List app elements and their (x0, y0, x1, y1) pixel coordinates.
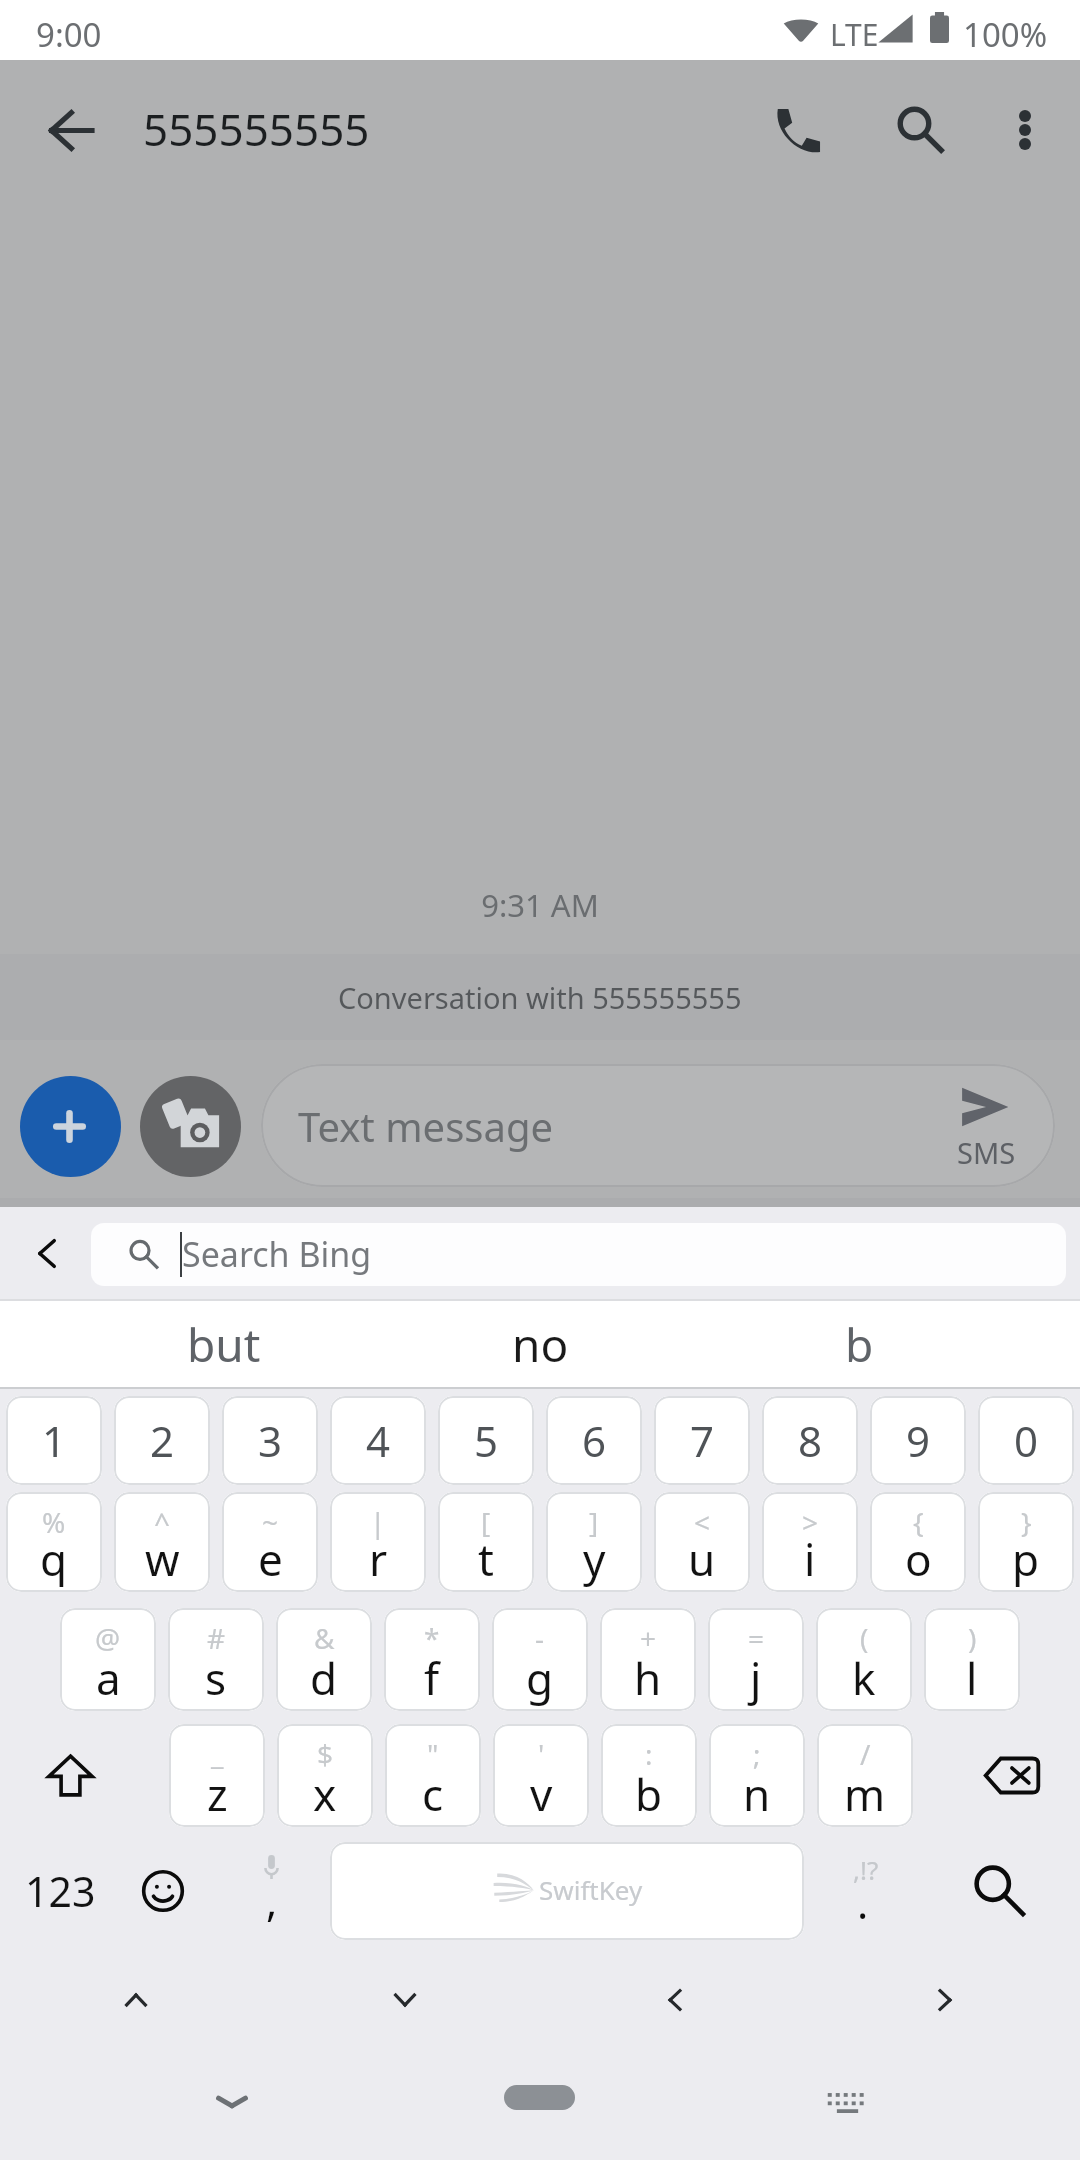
button[interactable]: Down (365, 1960, 445, 2040)
staticText: 555555555 (143, 99, 370, 159)
staticText: 7 (690, 1412, 715, 1469)
button[interactable]: ; (709, 1724, 805, 1827)
button[interactable]: _ (169, 1724, 265, 1827)
button[interactable]: Backspace (925, 1724, 1080, 1827)
staticText: d (310, 1648, 338, 1708)
staticText: { (913, 1503, 924, 1541)
button[interactable]: & (276, 1608, 372, 1711)
button[interactable]: ) (924, 1608, 1020, 1711)
button[interactable]: Add attachment (20, 1076, 121, 1177)
button[interactable]: > (762, 1492, 858, 1592)
button[interactable]: Back (28, 88, 112, 172)
staticText: ~ (262, 1503, 279, 1541)
staticText: f (424, 1648, 440, 1708)
button[interactable]: | (330, 1492, 426, 1592)
staticText: @ (95, 1619, 121, 1657)
button[interactable]: Right (905, 1960, 985, 2040)
button[interactable]: Period (810, 1842, 918, 1940)
button[interactable]: Back (16, 1224, 74, 1282)
staticText: - (535, 1619, 545, 1657)
button[interactable]: { (870, 1492, 966, 1592)
button[interactable]: Switch keyboard (806, 2062, 886, 2142)
button[interactable]: Search Bing (91, 1223, 1066, 1286)
button[interactable]: 8 (762, 1396, 858, 1485)
button[interactable]: 5 (438, 1396, 534, 1485)
button[interactable]: 1 (6, 1396, 102, 1485)
button[interactable]: < (654, 1492, 750, 1592)
button[interactable]: Call (750, 80, 850, 180)
button[interactable]: More options (975, 80, 1075, 180)
button[interactable]: } (978, 1492, 1074, 1592)
staticText: & (314, 1619, 335, 1657)
staticText: e (258, 1529, 283, 1589)
button[interactable]: 0 (978, 1396, 1074, 1485)
staticText: ,!? (853, 1852, 879, 1887)
staticText: % (42, 1503, 66, 1541)
button[interactable]: ~ (222, 1492, 318, 1592)
button[interactable]: ] (546, 1492, 642, 1592)
staticText: < (694, 1503, 711, 1541)
button[interactable]: ' (493, 1724, 589, 1827)
button[interactable]: Search (870, 80, 970, 180)
button[interactable]: / (817, 1724, 913, 1827)
staticText: | (370, 1503, 386, 1541)
button[interactable]: ( (816, 1608, 912, 1711)
staticText: b (635, 1764, 663, 1824)
staticText: u (688, 1529, 716, 1589)
button[interactable]: no (380, 1301, 700, 1387)
button[interactable]: Left (635, 1960, 715, 2040)
button[interactable]: + (600, 1608, 696, 1711)
button[interactable]: @ (60, 1608, 156, 1711)
button[interactable]: Hide keyboard (192, 2062, 272, 2142)
staticText: q (40, 1529, 68, 1589)
button[interactable]: b (699, 1301, 1019, 1387)
button[interactable]: 6 (546, 1396, 642, 1485)
button[interactable]: - (492, 1608, 588, 1711)
staticText: } (1021, 1503, 1032, 1541)
button[interactable]: Comma and voice input (214, 1842, 326, 1940)
button[interactable]: Search (946, 1842, 1052, 1940)
button[interactable]: Home (504, 2085, 575, 2110)
staticText: 8 (798, 1412, 823, 1469)
staticText: 4 (366, 1412, 391, 1469)
button[interactable]: 4 (330, 1396, 426, 1485)
button[interactable]: Shift (0, 1724, 169, 1827)
staticText: LTE (830, 14, 879, 55)
staticText: 6 (582, 1412, 607, 1469)
button[interactable]: ^ (114, 1492, 210, 1592)
button[interactable]: 3 (222, 1396, 318, 1485)
button[interactable]: 9 (870, 1396, 966, 1485)
staticText: SMS (957, 1133, 1016, 1172)
staticText: l (966, 1648, 978, 1708)
staticText: : (645, 1735, 653, 1773)
staticText: Search Bing (182, 1231, 372, 1277)
staticText: 100% (963, 12, 1048, 57)
staticText: ; (753, 1735, 761, 1773)
staticText: ] (589, 1503, 599, 1541)
staticText: # (207, 1619, 226, 1657)
staticText: c (422, 1764, 444, 1824)
button[interactable]: Up (96, 1960, 176, 2040)
staticText: 3 (258, 1412, 283, 1469)
button[interactable]: Camera (140, 1076, 241, 1177)
staticText: 2 (150, 1412, 175, 1469)
button[interactable]: $ (277, 1724, 373, 1827)
button[interactable]: = (708, 1608, 804, 1711)
staticText: k (852, 1648, 876, 1708)
button[interactable]: [ (438, 1492, 534, 1592)
button[interactable]: * (384, 1608, 480, 1711)
button[interactable]: Emoji (114, 1842, 208, 1940)
staticText: / (860, 1735, 871, 1773)
button[interactable]: % (6, 1492, 102, 1592)
staticText: b (845, 1313, 874, 1376)
button[interactable]: # (168, 1608, 264, 1711)
staticText: but (187, 1313, 261, 1376)
button[interactable]: but (64, 1301, 384, 1387)
button[interactable]: 7 (654, 1396, 750, 1485)
button[interactable]: : (601, 1724, 697, 1827)
button[interactable]: 123 (6, 1842, 114, 1940)
button[interactable]: 2 (114, 1396, 210, 1485)
button[interactable]: Text message (261, 1064, 1055, 1187)
button[interactable]: Space (330, 1842, 804, 1940)
button[interactable]: " (385, 1724, 481, 1827)
